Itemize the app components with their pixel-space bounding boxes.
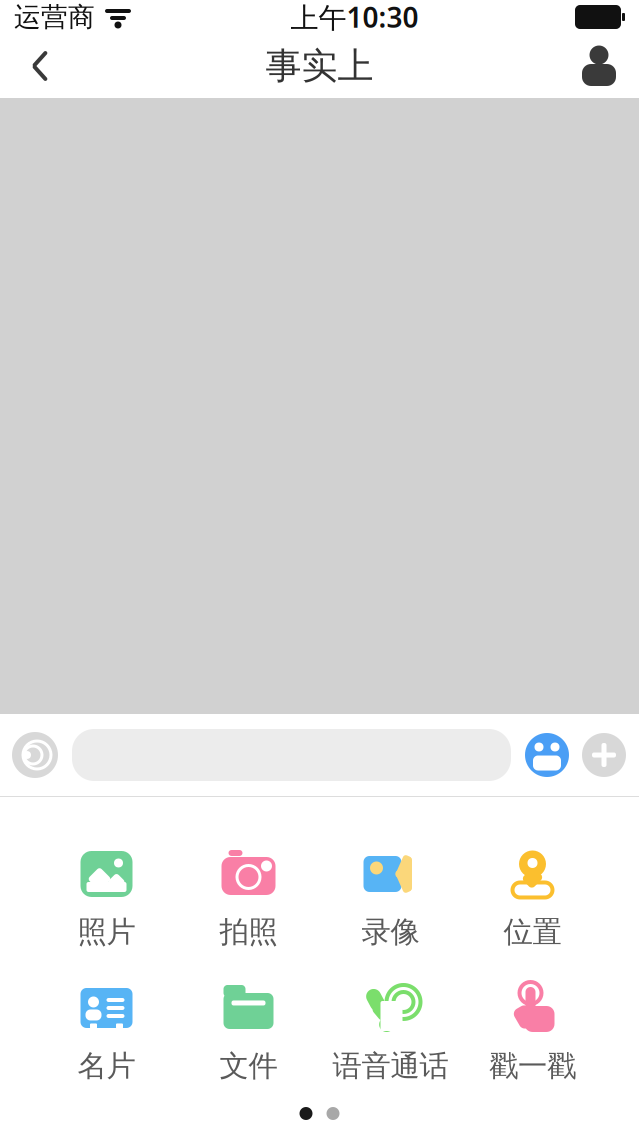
button[interactable]: 名片	[35, 977, 177, 1089]
staticText: 运营商	[14, 1, 95, 33]
staticText: 录像	[361, 914, 419, 950]
button[interactable]: 文件	[177, 977, 319, 1089]
button[interactable]: 联系人资料	[569, 38, 629, 94]
staticText: 位置	[503, 914, 561, 950]
staticText: 拍照	[219, 914, 277, 950]
button[interactable]: 照片	[35, 843, 177, 955]
staticText: 上午10:30	[290, 0, 418, 36]
staticText: 名片	[77, 1048, 135, 1084]
button[interactable]: 返回	[10, 38, 70, 94]
button[interactable]: 语音输入	[6, 726, 64, 784]
staticText: 语音通话	[332, 1048, 448, 1084]
button[interactable]: 更多	[575, 726, 633, 784]
button[interactable]: 录像	[319, 843, 461, 955]
staticText: 事实上	[265, 44, 373, 88]
staticText: 戳一戳	[489, 1048, 576, 1084]
button[interactable]: 表情	[519, 726, 575, 784]
staticText: 文件	[219, 1048, 277, 1084]
button[interactable]: 位置	[461, 843, 603, 955]
button[interactable]: 戳一戳	[461, 977, 603, 1089]
button[interactable]: 语音通话	[319, 977, 461, 1089]
button[interactable]: 拍照	[177, 843, 319, 955]
staticText: 照片	[77, 914, 135, 950]
